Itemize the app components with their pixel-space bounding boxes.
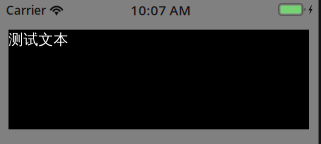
staticText: 10:07 AM [130, 1, 190, 19]
staticText: Carrier [6, 2, 46, 18]
staticText: 测试文本 [8, 31, 68, 49]
